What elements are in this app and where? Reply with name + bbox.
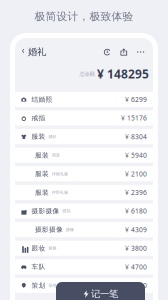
staticText: ¥ 4700 bbox=[125, 262, 147, 271]
button[interactable]: 摄影摄像 bbox=[15, 203, 153, 218]
staticText: ¥ 5940 bbox=[125, 151, 147, 160]
button[interactable]: 摄影摄像 bbox=[15, 222, 153, 237]
staticText: 戒指 bbox=[32, 114, 46, 122]
staticText: 场地布置 bbox=[49, 283, 65, 288]
staticText: ¥ 2396 bbox=[125, 188, 147, 197]
staticText: 西装 bbox=[52, 153, 60, 158]
staticText: 摄影摄像 bbox=[32, 207, 60, 215]
staticText: 新娘 bbox=[49, 246, 57, 251]
button[interactable]: 服装 bbox=[15, 148, 153, 163]
button[interactable]: 分享 bbox=[116, 44, 132, 60]
staticText: 车队 bbox=[32, 263, 46, 271]
staticText: 服装 bbox=[35, 188, 49, 196]
staticText: 伴郎礼服 bbox=[52, 190, 68, 195]
button[interactable]: 服装 bbox=[15, 129, 153, 144]
staticText: ¥ 15176 bbox=[121, 114, 147, 122]
button[interactable]: 策划 bbox=[15, 278, 153, 293]
button[interactable]: 更多 bbox=[132, 44, 149, 60]
button[interactable]: 记一笔 bbox=[56, 282, 145, 300]
staticText: ¥ 2100 bbox=[125, 169, 147, 178]
staticText: 结婚照 bbox=[32, 95, 53, 103]
staticText: 摄影摄像 bbox=[35, 225, 63, 234]
button[interactable]: 婚礼 bbox=[15, 42, 46, 62]
staticText: ¥ 8304 bbox=[125, 132, 147, 141]
staticText: ¥ 17200 bbox=[121, 281, 147, 290]
staticText: 服装 bbox=[32, 132, 46, 141]
staticText: 记一笔 bbox=[91, 288, 118, 300]
staticText: 服装 bbox=[35, 170, 49, 178]
staticText: ¥ 4309 bbox=[125, 225, 147, 234]
staticText: ¥ 6180 bbox=[125, 207, 147, 215]
button[interactable]: 戒指 bbox=[15, 110, 153, 125]
button[interactable]: 历史记录 bbox=[99, 44, 115, 60]
button[interactable]: 车队 bbox=[15, 259, 153, 274]
button[interactable]: 结婚照 bbox=[15, 92, 153, 107]
staticText: 策划 bbox=[32, 281, 46, 289]
staticText: 婚礼 bbox=[28, 46, 46, 58]
staticText: 摄像 bbox=[66, 227, 74, 232]
button[interactable]: 服装 bbox=[15, 185, 153, 200]
staticText: ¥ 148295 bbox=[97, 66, 149, 82]
staticText: 极简设计，极致体验 bbox=[34, 10, 133, 23]
button[interactable]: 服装 bbox=[15, 166, 153, 181]
staticText: 总金额 bbox=[79, 71, 94, 77]
staticText: 跟妆 bbox=[32, 244, 46, 252]
staticText: 跟拍 bbox=[63, 209, 71, 213]
staticText: 婚纱 bbox=[49, 134, 57, 139]
button[interactable]: 跟妆 bbox=[15, 241, 153, 256]
staticText: 伴娘礼服 bbox=[52, 171, 68, 176]
staticText: 服装 bbox=[35, 151, 49, 159]
staticText: ¥ 3800 bbox=[125, 244, 147, 253]
staticText: ¥ 6299 bbox=[125, 95, 147, 104]
